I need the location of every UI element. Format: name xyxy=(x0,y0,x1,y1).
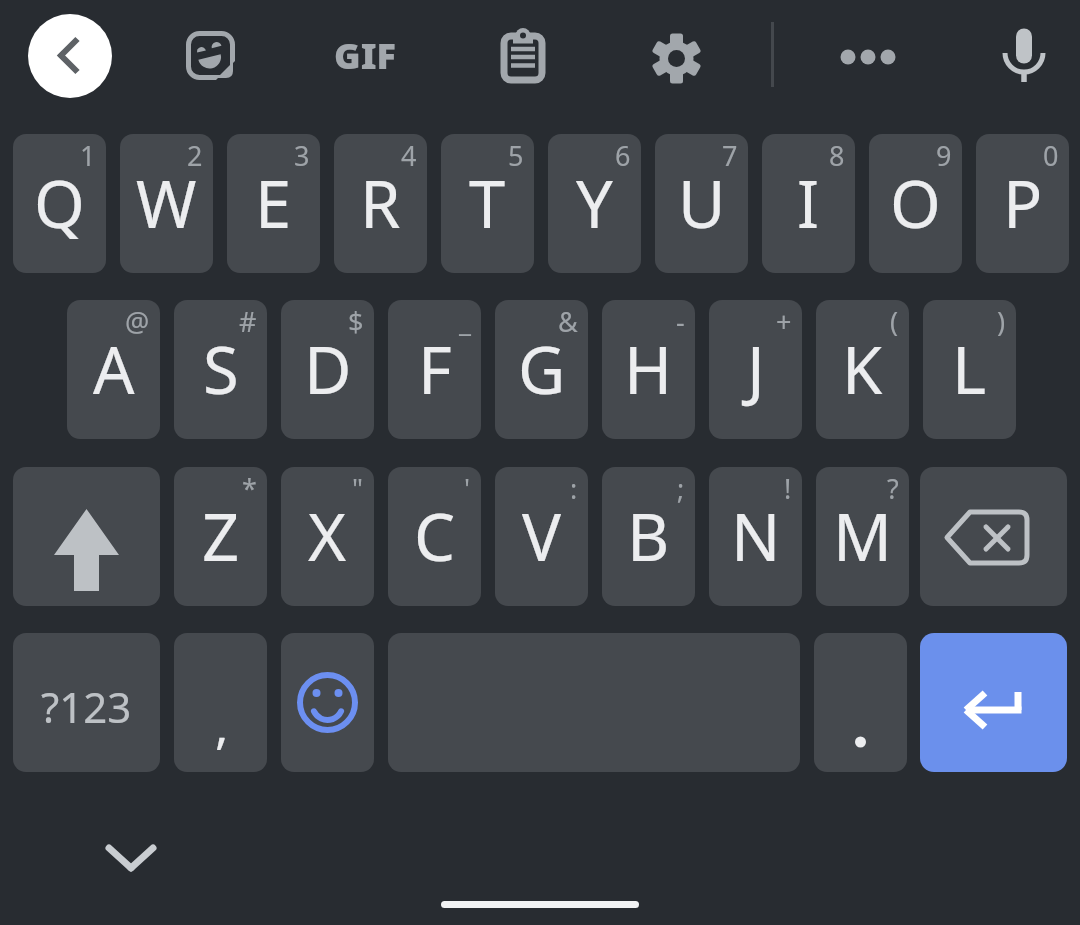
button[interactable]: D xyxy=(281,300,374,439)
button[interactable] xyxy=(1000,26,1048,84)
button[interactable]: G xyxy=(495,300,588,439)
button[interactable]: Q xyxy=(13,134,106,273)
staticText: " xyxy=(352,470,364,507)
button[interactable] xyxy=(186,31,236,81)
button[interactable] xyxy=(281,633,374,772)
staticText: N xyxy=(731,492,781,581)
button[interactable]: X xyxy=(281,467,374,606)
button[interactable]: P xyxy=(976,134,1069,273)
staticText: F xyxy=(418,325,452,414)
staticText: Y xyxy=(576,159,613,248)
staticText: Q xyxy=(34,159,85,248)
staticText: E xyxy=(255,159,292,248)
button[interactable]: Z xyxy=(174,467,267,606)
staticText: + xyxy=(776,303,792,340)
staticText: - xyxy=(676,303,685,340)
button[interactable] xyxy=(651,33,702,84)
staticText: D xyxy=(304,325,352,414)
button[interactable] xyxy=(13,467,160,606)
staticText: J xyxy=(747,325,765,414)
staticText: $ xyxy=(348,303,364,340)
staticText: 8 xyxy=(829,137,845,174)
staticText: ! xyxy=(784,470,792,507)
staticText: B xyxy=(627,492,670,581)
button[interactable] xyxy=(814,633,907,772)
staticText: A xyxy=(93,325,135,414)
button[interactable]: I xyxy=(762,134,855,273)
staticText: 9 xyxy=(936,137,952,174)
staticText: V xyxy=(522,492,562,581)
button[interactable]: O xyxy=(869,134,962,273)
staticText: H xyxy=(624,325,673,414)
button[interactable] xyxy=(105,840,157,876)
staticText: W xyxy=(136,159,197,248)
button[interactable]: L xyxy=(923,300,1016,439)
button[interactable]: V xyxy=(495,467,588,606)
button[interactable]: W xyxy=(120,134,213,273)
button[interactable]: S xyxy=(174,300,267,439)
button[interactable]: Y xyxy=(548,134,641,273)
staticText: _ xyxy=(459,303,471,340)
button[interactable]: B xyxy=(602,467,695,606)
staticText: G xyxy=(518,325,566,414)
button[interactable]: H xyxy=(602,300,695,439)
staticText: * xyxy=(242,470,257,507)
staticText: Z xyxy=(202,492,240,581)
staticText: , xyxy=(215,691,229,759)
staticText: ( xyxy=(890,303,899,340)
button[interactable]: J xyxy=(709,300,802,439)
button[interactable] xyxy=(920,467,1067,606)
staticText: S xyxy=(203,325,239,414)
staticText: @ xyxy=(125,303,150,340)
button[interactable]: E xyxy=(227,134,320,273)
button[interactable]: A xyxy=(67,300,160,439)
staticText: 6 xyxy=(615,137,631,174)
staticText: GIF xyxy=(334,31,396,80)
button[interactable]: R xyxy=(334,134,427,273)
staticText: ? xyxy=(887,470,899,507)
button[interactable]: ?123 xyxy=(13,633,160,772)
staticText: 2 xyxy=(187,137,203,174)
staticText: L xyxy=(952,325,987,414)
staticText: : xyxy=(570,470,578,507)
button[interactable]: K xyxy=(816,300,909,439)
staticText: 0 xyxy=(1043,137,1059,174)
staticText: U xyxy=(678,159,726,248)
staticText: O xyxy=(890,159,941,248)
staticText: 1 xyxy=(80,137,96,174)
button[interactable] xyxy=(920,633,1067,772)
button[interactable]: GIF xyxy=(325,28,405,82)
staticText: & xyxy=(558,303,578,340)
staticText: K xyxy=(842,325,883,414)
button[interactable]: C xyxy=(388,467,481,606)
staticText: M xyxy=(833,492,892,581)
button[interactable] xyxy=(28,14,112,98)
staticText: # xyxy=(239,303,257,340)
staticText: ' xyxy=(464,470,471,507)
staticText: 3 xyxy=(294,137,310,174)
staticText: ; xyxy=(677,470,685,507)
staticText: X xyxy=(308,492,347,581)
staticText: ) xyxy=(997,303,1006,340)
staticText: 7 xyxy=(722,137,738,174)
staticText: ?123 xyxy=(41,678,132,735)
button[interactable]: N xyxy=(709,467,802,606)
staticText: T xyxy=(469,159,506,248)
staticText: I xyxy=(797,159,820,248)
button[interactable]: F xyxy=(388,300,481,439)
staticText: P xyxy=(1003,159,1043,248)
button[interactable]: U xyxy=(655,134,748,273)
staticText: 4 xyxy=(401,137,417,174)
button[interactable] xyxy=(840,47,896,67)
staticText: 5 xyxy=(508,137,524,174)
button[interactable] xyxy=(498,26,546,84)
button[interactable]: , xyxy=(174,633,267,772)
staticText: R xyxy=(360,159,401,248)
staticText: C xyxy=(414,492,456,581)
button[interactable]: M xyxy=(816,467,909,606)
button[interactable]: T xyxy=(441,134,534,273)
